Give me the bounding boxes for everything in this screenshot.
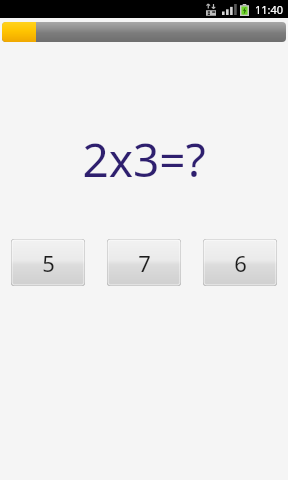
button[interactable]: 5 (11, 239, 85, 286)
staticText: 2x3=? (82, 128, 206, 191)
staticText: 6 (234, 248, 247, 278)
button[interactable]: 6 (203, 239, 277, 286)
staticText: 7 (138, 248, 151, 278)
staticText: 5 (42, 248, 55, 278)
staticText: 11:40 (255, 2, 284, 17)
button[interactable]: 7 (107, 239, 181, 286)
